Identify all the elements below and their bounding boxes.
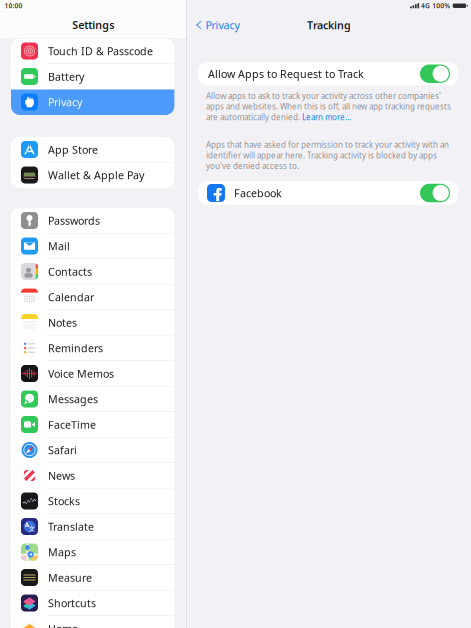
staticText: Stocks: [48, 494, 80, 508]
button[interactable]: News: [11, 463, 174, 488]
staticText: Reminders: [48, 341, 103, 355]
button[interactable]: Facebook: [198, 181, 458, 205]
staticText: Translate: [48, 519, 94, 534]
staticText: Tracking: [307, 18, 351, 32]
staticText: Wallet & Apple Pay: [48, 168, 144, 182]
staticText: Apps that have asked for permission to t…: [206, 139, 449, 171]
staticText: Facebook: [234, 186, 282, 200]
button[interactable]: Allow Apps to Request to Track: [198, 62, 458, 85]
staticText: FaceTime: [48, 417, 96, 432]
staticText: Contacts: [48, 264, 92, 279]
staticText: 文: [29, 525, 36, 533]
button[interactable]: Messages: [11, 386, 174, 412]
staticText: Allow apps to ask to track your activity…: [206, 90, 451, 122]
staticText: Voice Memos: [48, 366, 114, 381]
staticText: Notes: [48, 315, 77, 330]
button[interactable]: Measure: [11, 565, 174, 590]
button[interactable]: Reminders: [11, 335, 174, 361]
button[interactable]: Touch ID & Passcode: [11, 38, 174, 64]
staticText: Messages: [48, 392, 98, 406]
staticText: Calendar: [48, 290, 94, 304]
staticText: Mail: [48, 239, 70, 253]
staticText: Privacy: [48, 95, 82, 109]
staticText: Battery: [48, 69, 84, 84]
button[interactable]: Wallet & Apple Pay: [11, 162, 174, 188]
staticText: Safari: [48, 443, 77, 457]
staticText: 100%: [432, 1, 450, 10]
button[interactable]: App Store: [11, 137, 174, 162]
staticText: News: [48, 468, 75, 483]
staticText: App Store: [48, 142, 98, 157]
button[interactable]: Calendar: [11, 284, 174, 310]
staticText: Allow Apps to Request to Track: [208, 67, 364, 81]
button[interactable]: Battery: [11, 64, 174, 89]
button[interactable]: Privacy: [11, 89, 174, 115]
staticText: Measure: [48, 570, 92, 585]
button[interactable]: Safari: [11, 437, 174, 463]
button[interactable]: Notes: [11, 310, 174, 335]
staticText: Settings: [72, 18, 114, 32]
button[interactable]: Mail: [11, 233, 174, 259]
staticText: Passwords: [48, 213, 100, 228]
staticText: Home: [48, 621, 78, 628]
button[interactable]: Privacy: [196, 18, 240, 32]
button[interactable]: Maps: [11, 539, 174, 565]
button[interactable]: Passwords: [11, 208, 174, 233]
staticText: A: [25, 520, 30, 529]
staticText: 4G: [421, 1, 430, 10]
staticText: Maps: [48, 545, 76, 559]
button[interactable]: Home: [11, 616, 174, 628]
button[interactable]: FaceTime: [11, 412, 174, 437]
button[interactable]: Voice Memos: [11, 361, 174, 386]
staticText: Privacy: [206, 18, 240, 32]
button[interactable]: Shortcuts: [11, 590, 174, 616]
staticText: Shortcuts: [48, 596, 96, 610]
button[interactable]: Contacts: [11, 259, 174, 284]
staticText: Touch ID & Passcode: [48, 44, 153, 58]
button[interactable]: Stocks: [11, 488, 174, 514]
staticText: 10:00: [4, 1, 22, 10]
button[interactable]: A: [11, 514, 174, 539]
